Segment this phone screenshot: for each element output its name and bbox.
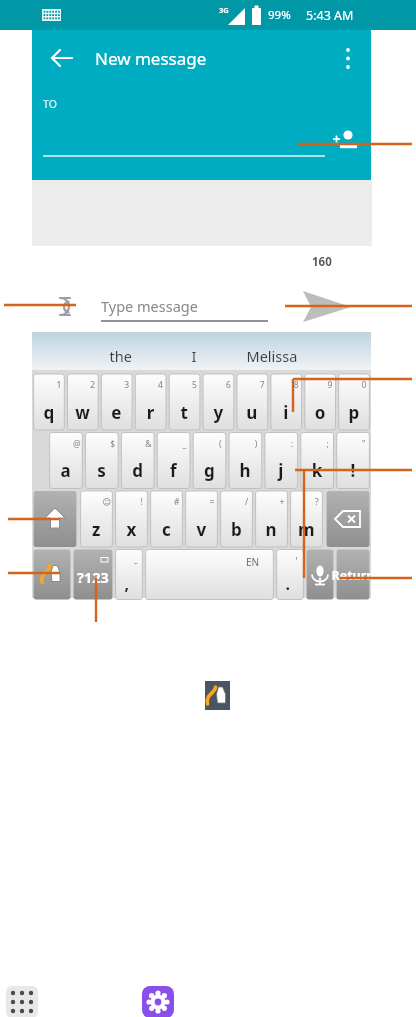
button[interactable]: More options bbox=[330, 40, 368, 76]
button[interactable]: Switch input method bbox=[200, 680, 234, 714]
button[interactable]: Apps bbox=[6, 984, 40, 1017]
button[interactable]: Send bbox=[288, 286, 352, 328]
button[interactable]: Settings bbox=[141, 984, 175, 1017]
button[interactable]: Attach file bbox=[42, 288, 84, 328]
button[interactable]: Add recipient bbox=[328, 124, 370, 156]
button[interactable]: Back bbox=[45, 40, 83, 76]
button[interactable]: Type message bbox=[95, 288, 275, 326]
